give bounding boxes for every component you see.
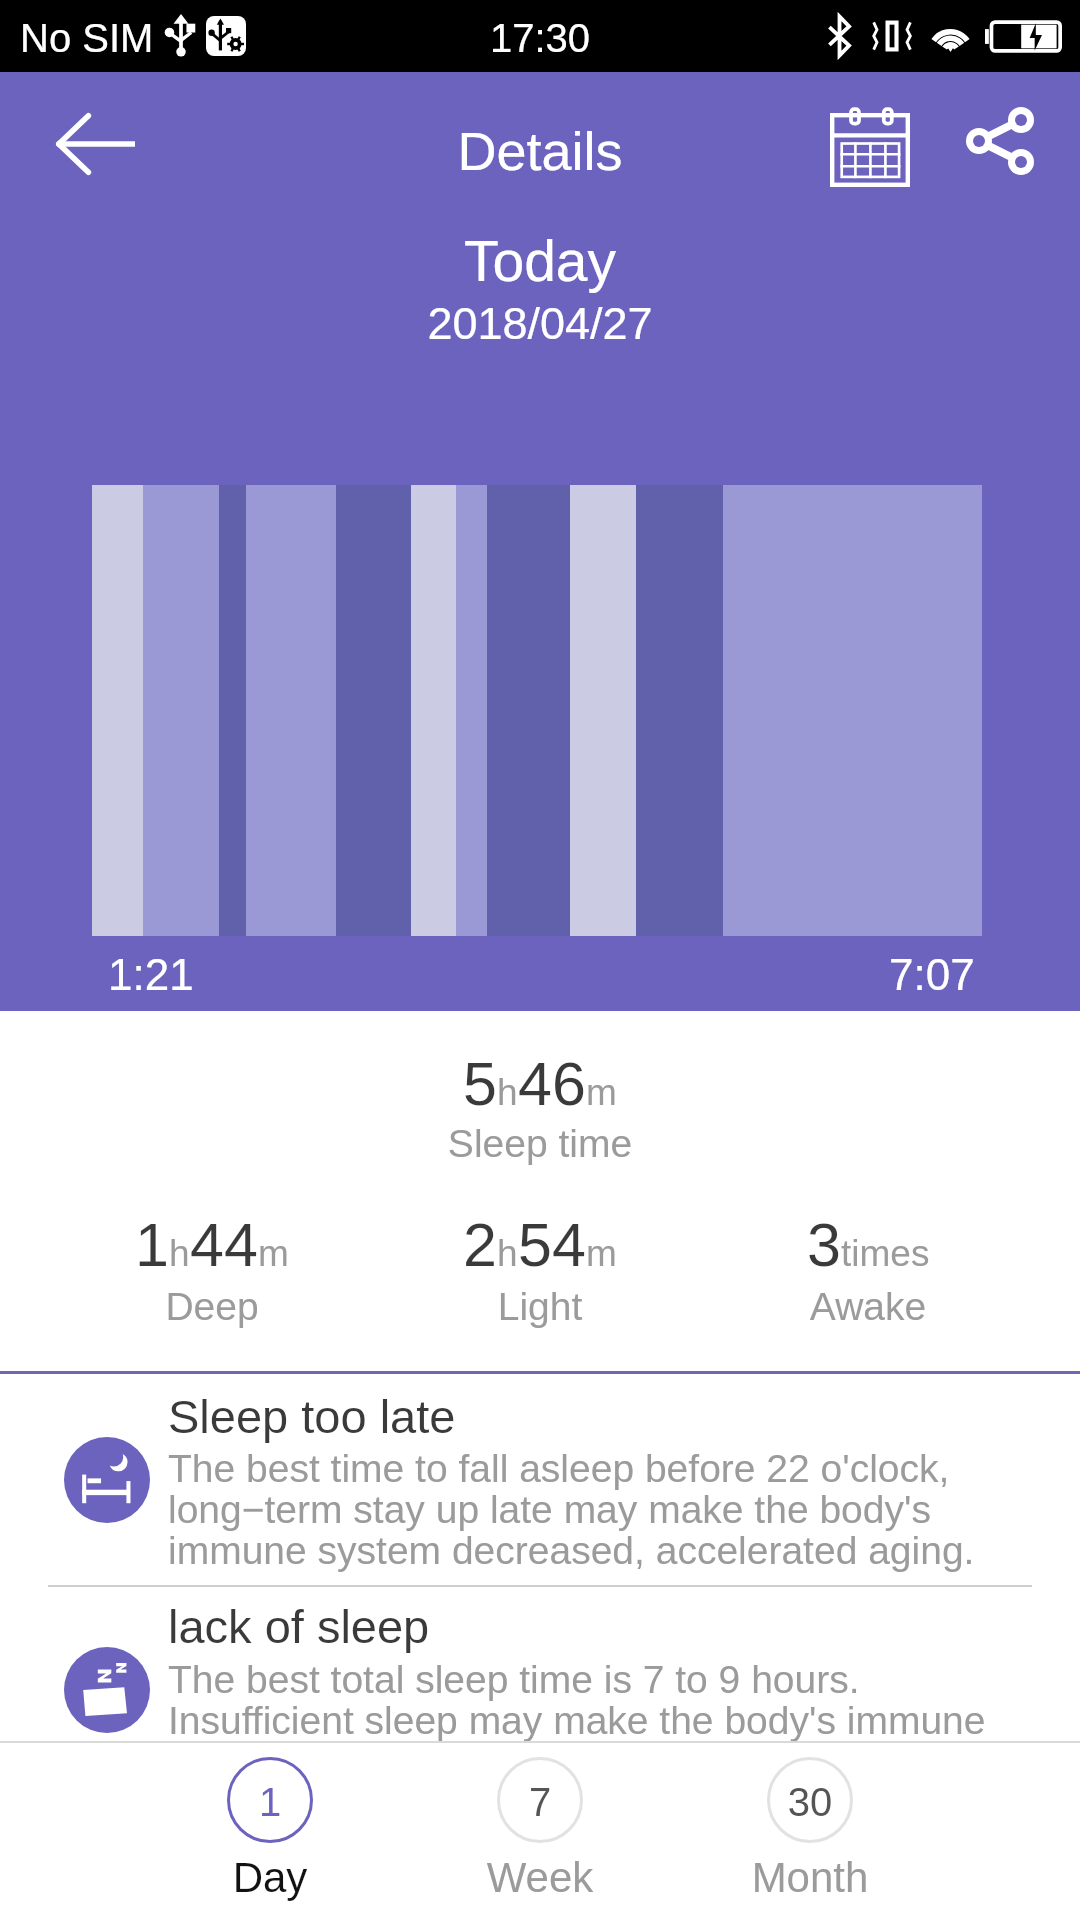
staticText: Sleep time	[340, 1122, 740, 1166]
staticText: m	[586, 1072, 617, 1113]
staticText: 44	[190, 1211, 258, 1279]
staticText: Today	[0, 229, 1080, 293]
staticText: 3	[807, 1211, 841, 1279]
staticText: Week	[430, 1854, 650, 1901]
staticText: Deep	[12, 1285, 412, 1329]
staticText: m	[586, 1233, 617, 1274]
staticText: 46	[518, 1050, 586, 1118]
button[interactable]: 1	[160, 1752, 380, 1912]
button[interactable]: lack of sleep	[0, 1587, 1080, 1741]
staticText: 1	[135, 1211, 169, 1279]
button[interactable]: Share	[940, 87, 1060, 207]
staticText: Sleep too late	[168, 1390, 456, 1443]
staticText: The best time to fall asleep before 22 o…	[168, 1447, 988, 1572]
staticText: 2018/04/27	[0, 298, 1080, 348]
staticText: h	[169, 1233, 190, 1274]
staticText: Month	[700, 1854, 920, 1901]
staticText: 54	[518, 1211, 586, 1279]
staticText: times	[841, 1233, 930, 1274]
staticText: Day	[160, 1854, 380, 1901]
staticText: lack of sleep	[168, 1600, 430, 1653]
staticText: 7	[430, 1780, 650, 1825]
staticText: Details	[0, 121, 1080, 181]
button[interactable]: Back	[26, 86, 146, 206]
staticText: 7:07	[889, 950, 975, 999]
staticText: 5	[463, 1050, 497, 1118]
button[interactable]: 30	[700, 1752, 920, 1912]
staticText: 1	[160, 1780, 380, 1825]
staticText: 1:21	[108, 950, 194, 999]
staticText: m	[258, 1233, 289, 1274]
staticText: The best total sleep time is 7 to 9 hour…	[168, 1658, 988, 1741]
button[interactable]: Calendar	[810, 87, 930, 207]
staticText: h	[497, 1072, 518, 1113]
staticText: h	[497, 1233, 518, 1274]
button[interactable]: 7	[430, 1752, 650, 1912]
staticText: 2	[463, 1211, 497, 1279]
staticText: 17:30	[0, 16, 1080, 61]
staticText: Light	[340, 1285, 740, 1329]
staticText: 30	[700, 1780, 920, 1825]
button[interactable]: Sleep too late	[0, 1373, 1080, 1585]
staticText: Awake	[668, 1285, 1068, 1329]
staticText: No SIM	[20, 16, 154, 61]
